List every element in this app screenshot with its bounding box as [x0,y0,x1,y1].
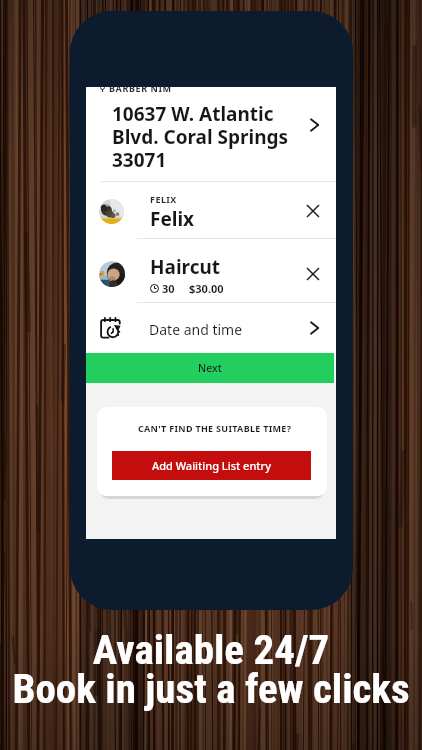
staticText: 10637 W. Atlantic Blvd. Coral Springs 33… [112,101,292,173]
staticText: Date and time [149,320,243,339]
staticText: Available 24/7 Book in just a few clicks [0,626,422,713]
button[interactable]: Next [86,353,334,383]
staticText: Felix [150,206,195,232]
staticText: Haircut [150,254,221,280]
button[interactable]: Remove Haircut [300,261,325,286]
button[interactable] [86,92,336,181]
button[interactable] [86,181,336,239]
staticText: 30 [162,281,175,296]
button[interactable] [86,238,336,302]
staticText: $30.00 [189,281,224,296]
staticText: BARBER NIM [109,82,172,94]
button[interactable]: Remove Felix [300,198,325,223]
other: Open [308,119,320,131]
staticText: Add Waiiting List entry [152,458,271,473]
staticText: FELIX [150,193,177,205]
staticText: CAN'T FIND THE SUITABLE TIME? [138,422,292,434]
other: Open [308,322,320,334]
button[interactable]: Add Waiiting List entry [112,451,311,480]
button[interactable] [86,303,336,353]
staticText: Next [198,361,222,375]
